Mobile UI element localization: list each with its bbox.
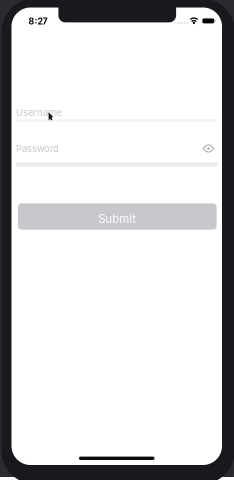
staticText: Submit xyxy=(98,212,136,226)
button[interactable]: Submit xyxy=(18,203,217,230)
button[interactable]: Username xyxy=(16,107,217,123)
staticText: Password xyxy=(16,143,59,154)
staticText: Username xyxy=(16,107,61,118)
staticText: 8:27 xyxy=(29,16,48,26)
button[interactable]: Password xyxy=(16,143,217,167)
